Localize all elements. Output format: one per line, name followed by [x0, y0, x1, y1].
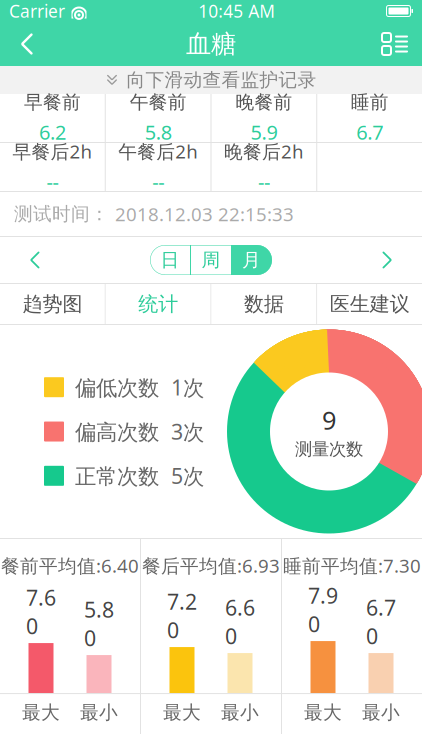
button[interactable]: 周	[191, 245, 231, 275]
staticText: 测试时间：	[14, 202, 109, 225]
staticText: 餐前平均值:6.40	[1, 553, 139, 578]
staticText: 9	[322, 403, 336, 437]
staticText: 7.60	[26, 583, 56, 640]
staticText: 6.60	[225, 593, 255, 650]
staticText: 睡前平均值:7.30	[283, 553, 421, 578]
staticText: 6.70	[366, 593, 396, 650]
staticText: --	[258, 169, 270, 195]
staticText: 午餐前	[130, 91, 187, 114]
staticText: 最大	[304, 701, 342, 724]
button[interactable]: 晚餐前	[211, 94, 316, 142]
staticText: 数据	[244, 292, 284, 316]
staticText: 7.90	[308, 581, 338, 638]
staticText: 晚餐后2h	[224, 139, 304, 164]
button[interactable]: 统计	[106, 284, 211, 324]
staticText: 测量次数	[295, 439, 363, 460]
staticText: 晚餐前	[235, 91, 292, 114]
button[interactable]: 早餐后2h	[0, 143, 105, 191]
staticText: 偏低次数 1次	[75, 373, 204, 401]
button[interactable]: 日	[150, 245, 190, 275]
staticText: 趋势图	[22, 292, 82, 316]
staticText: 最大	[22, 701, 60, 724]
staticText: 5.8	[145, 119, 172, 145]
staticText: Carrier	[9, 0, 65, 22]
staticText: 餐后平均值:6.93	[142, 553, 280, 578]
staticText: 睡前	[351, 91, 389, 114]
button[interactable]: 趋势图	[0, 284, 105, 324]
staticText: 最小	[221, 701, 259, 724]
staticText: 月	[242, 248, 261, 271]
staticText: 日	[160, 248, 179, 271]
staticText: 血糖	[186, 28, 236, 59]
button[interactable]: 月	[231, 245, 272, 275]
staticText: 10:45 AM	[198, 0, 275, 22]
staticText: --	[46, 169, 58, 195]
staticText: 5.9	[250, 119, 277, 145]
staticText: 向下滑动查看监护记录	[126, 68, 316, 91]
button[interactable]: 记录列表	[368, 22, 422, 66]
staticText: 5.80	[84, 595, 114, 652]
staticText: 偏高次数 3次	[75, 417, 204, 446]
staticText: 最小	[362, 701, 400, 724]
button[interactable]: 医生建议	[317, 284, 422, 324]
button[interactable]: 早餐前	[0, 94, 105, 142]
button[interactable]: 上一个周期	[0, 237, 70, 283]
staticText: 医生建议	[330, 292, 410, 316]
staticText: 6.7	[356, 119, 383, 145]
button[interactable]: 午餐后2h	[106, 143, 211, 191]
staticText: 早餐后2h	[12, 139, 92, 164]
button[interactable]: 晚餐后2h	[211, 143, 316, 191]
staticText: 统计	[138, 292, 178, 316]
button[interactable]: 下一个周期	[352, 237, 422, 283]
button[interactable]: 午餐前	[106, 94, 211, 142]
staticText: --	[152, 169, 164, 195]
staticText: 周	[201, 248, 220, 271]
staticText: 6.2	[39, 119, 66, 145]
button[interactable]: 睡前	[317, 94, 422, 142]
staticText: 2018.12.03 22:15:33	[115, 202, 294, 226]
staticText: 最大	[163, 701, 201, 724]
staticText: 早餐前	[24, 91, 81, 114]
button[interactable]: 向下滑动查看监护记录	[0, 66, 422, 94]
staticText: 正常次数 5次	[75, 462, 204, 490]
button[interactable]: 返回	[0, 22, 54, 66]
staticText: 最小	[80, 701, 118, 724]
staticText: 7.20	[167, 587, 197, 644]
button[interactable]: 数据	[211, 284, 316, 324]
staticText: 午餐后2h	[118, 139, 198, 164]
